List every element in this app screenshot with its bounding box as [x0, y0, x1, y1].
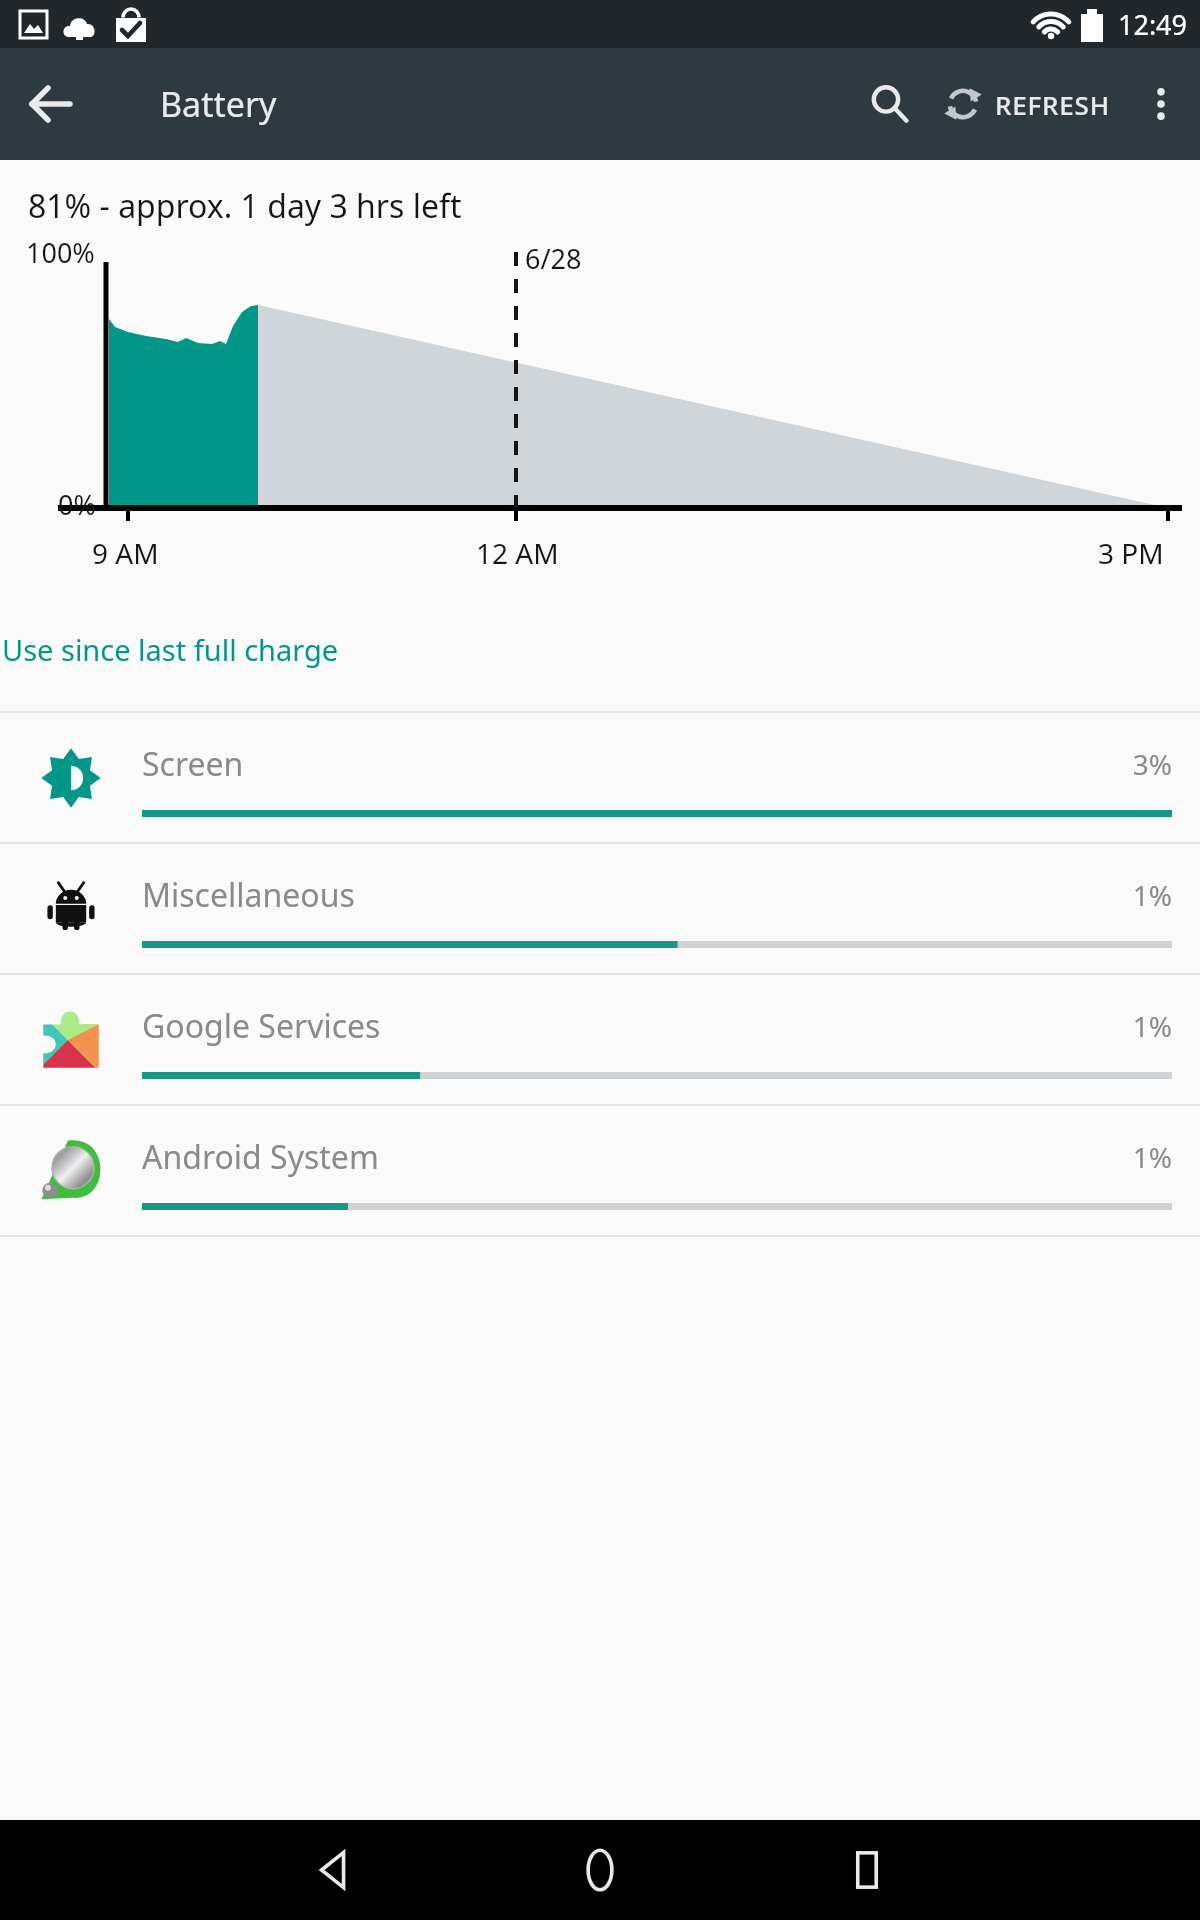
staticText: Screen [142, 742, 1132, 786]
staticText: 3% [1132, 745, 1172, 783]
staticText: 100% [26, 234, 95, 271]
staticText: REFRESH [995, 87, 1110, 122]
staticText: Battery [160, 81, 277, 127]
staticText: 9 AM [92, 534, 159, 572]
staticText: 81% - approx. 1 day 3 hrs left [28, 184, 462, 228]
staticText: 0% [58, 486, 96, 523]
button[interactable]: Android System [0, 1106, 1200, 1235]
button[interactable]: Miscellaneous [0, 844, 1200, 973]
staticText: Miscellaneous [142, 873, 1132, 917]
button[interactable]: Back [283, 1820, 383, 1920]
staticText: 1% [1132, 1138, 1172, 1176]
button[interactable]: Search [849, 64, 929, 144]
staticText: Use since last full charge [2, 630, 339, 669]
button[interactable]: Home [550, 1820, 650, 1920]
staticText: 6/28 [525, 240, 582, 277]
button[interactable]: Back [12, 66, 88, 142]
button[interactable]: Recent apps [817, 1820, 917, 1920]
staticText: 1% [1132, 876, 1172, 914]
staticText: 12 AM [476, 534, 559, 572]
staticText: 3 PM [1098, 534, 1164, 572]
staticText: 1% [1132, 1007, 1172, 1045]
button[interactable]: More options [1122, 65, 1200, 143]
button[interactable]: Use since last full charge [0, 608, 1200, 685]
button[interactable]: Screen [0, 713, 1200, 842]
button[interactable]: REFRESH [929, 48, 1122, 160]
staticText: Android System [142, 1135, 1132, 1179]
staticText: Google Services [142, 1004, 1132, 1048]
staticText: 12:49 [1118, 6, 1188, 43]
button[interactable]: Google Services [0, 975, 1200, 1104]
